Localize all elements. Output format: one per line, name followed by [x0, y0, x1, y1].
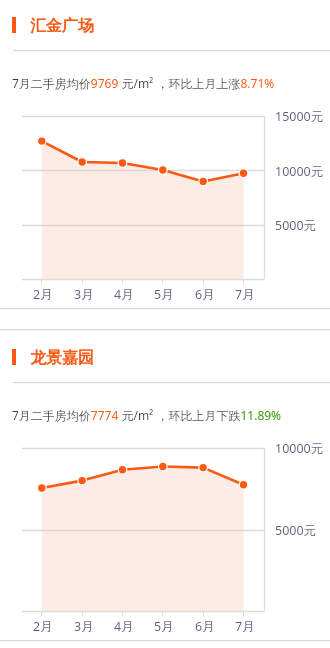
staticText: 10000元 [275, 163, 324, 180]
staticText: 6月 [195, 286, 215, 303]
staticText: 5月 [154, 286, 174, 303]
staticText: 5000元 [275, 522, 317, 539]
staticText: 7月二手房均价7774 元/m² ，环比上月下跌11.89% [12, 407, 282, 423]
staticText: 10000元 [275, 440, 324, 457]
staticText: 2月 [33, 618, 53, 635]
staticText: 3月 [74, 286, 94, 303]
button[interactable]: 龙景嘉园 [0, 332, 330, 382]
staticText: 15000元 [275, 108, 324, 125]
staticText: 5月 [154, 618, 174, 635]
staticText: 5000元 [275, 217, 317, 234]
staticText: 7月 [235, 618, 255, 635]
staticText: 龙景嘉园 [30, 348, 94, 368]
staticText: 2月 [33, 286, 53, 303]
staticText: 4月 [114, 286, 134, 303]
staticText: 3月 [74, 618, 94, 635]
staticText: 4月 [114, 618, 134, 635]
button[interactable]: 汇金广场 [0, 0, 330, 50]
staticText: 7月二手房均价9769 元/m² ，环比上月上涨8.71% [12, 75, 275, 91]
staticText: 汇金广场 [30, 16, 94, 36]
staticText: 6月 [195, 618, 215, 635]
staticText: 7月 [235, 286, 255, 303]
